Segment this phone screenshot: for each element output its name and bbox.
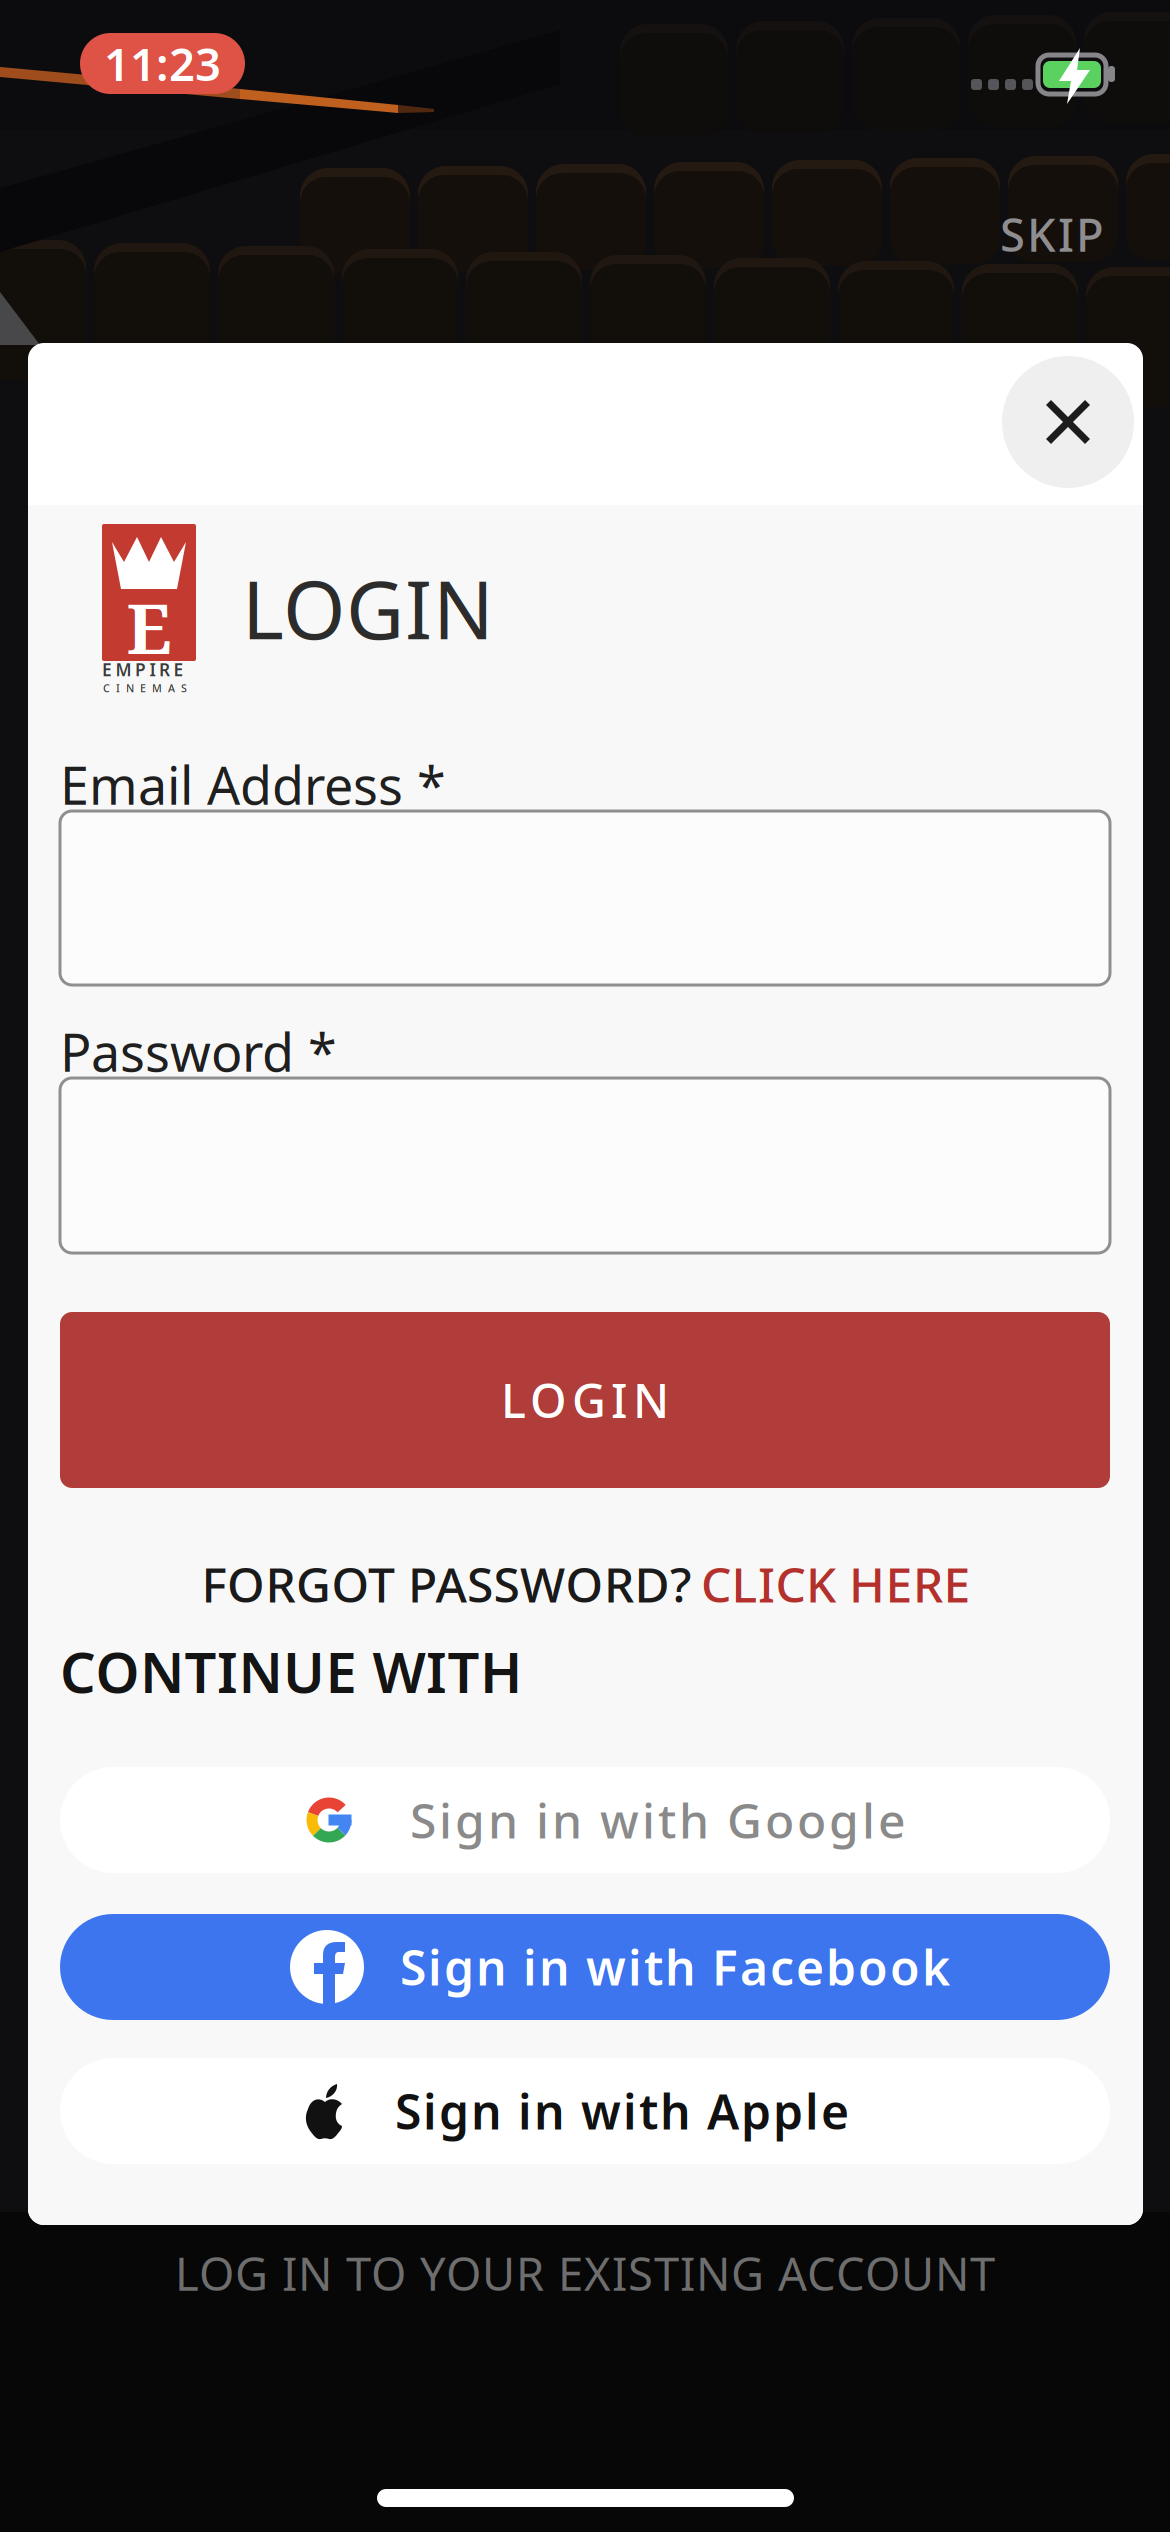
button[interactable]	[60, 1078, 1110, 1253]
button[interactable]: Sign in with Apple	[60, 2058, 1110, 2164]
staticText: FORGOT PASSWORD?	[201, 1552, 691, 1616]
staticText: E	[126, 580, 171, 674]
staticText: LOGIN	[242, 555, 494, 661]
staticText: 11:23	[104, 33, 221, 94]
button[interactable]	[60, 811, 1110, 985]
button[interactable]: CLICK HERE	[701, 1552, 1021, 1616]
button[interactable]: Sign in with Facebook	[60, 1914, 1110, 2020]
button[interactable]: LOG IN TO YOUR EXISTING ACCOUNT	[0, 2243, 1170, 2303]
staticText: Password *	[60, 1017, 337, 1086]
staticText: Sign in with Apple	[395, 2079, 849, 2143]
staticText: Sign in with Facebook	[400, 1935, 950, 1999]
staticText: CINEMAS	[103, 681, 187, 695]
staticText: Sign in with Google	[410, 1788, 906, 1852]
staticText: EMPIRE	[102, 658, 183, 681]
button[interactable]: 11:23	[80, 33, 245, 94]
staticText: LOGIN	[501, 1369, 669, 1431]
staticText: CLICK HERE	[701, 1552, 970, 1616]
staticText: LOG IN TO YOUR EXISTING ACCOUNT	[175, 2243, 995, 2303]
staticText: CONTINUE WITH	[60, 1634, 522, 1708]
staticText: Email Address *	[60, 750, 446, 819]
staticText: SKIP	[1000, 204, 1104, 264]
button[interactable]: SKIP	[1000, 204, 1104, 264]
button[interactable]	[1002, 356, 1134, 488]
button[interactable]: Sign in with Google	[60, 1767, 1110, 1873]
button[interactable]: LOGIN	[60, 1312, 1110, 1488]
